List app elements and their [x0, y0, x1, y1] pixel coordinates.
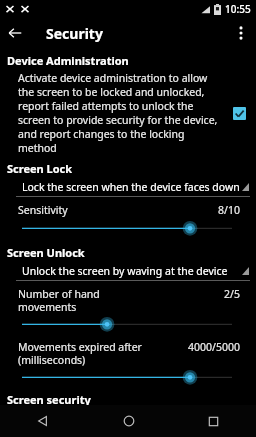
button[interactable]: Lock the screen when the device faces do… — [16, 180, 250, 197]
staticText: Activate device administration to allow … — [18, 71, 222, 155]
staticText: 8/10 — [218, 203, 240, 217]
staticText: Screen security — [7, 392, 91, 405]
button[interactable]: Unlock the screen by waving at the devic… — [16, 264, 250, 281]
staticText: Lock the screen when the device faces do… — [22, 180, 242, 194]
staticText: Security — [46, 24, 103, 43]
button[interactable]: Home — [86, 405, 171, 437]
button[interactable]: Activate device administration to allow … — [0, 71, 256, 155]
button[interactable]: Back — [0, 405, 86, 437]
staticText: Number of hand movements — [18, 287, 224, 314]
staticText: Movements expired after (milliseconds) — [18, 340, 188, 367]
button[interactable]: Back — [0, 18, 30, 48]
button[interactable]: Recent apps — [171, 405, 256, 437]
staticText: Sensitivity — [18, 203, 218, 217]
staticText: 10:55 — [225, 2, 251, 16]
button[interactable]: Slider — [0, 316, 256, 332]
staticText: 4000/5000 — [188, 340, 240, 354]
button[interactable]: Device administration enabled — [232, 106, 246, 120]
staticText: 2/5 — [224, 287, 240, 301]
staticText: Unlock the screen by waving at the devic… — [22, 264, 242, 278]
button[interactable]: Slider — [0, 220, 256, 236]
button[interactable]: Slider — [0, 369, 256, 385]
button[interactable]: More options — [226, 18, 256, 48]
staticText: Screen Lock — [7, 161, 73, 176]
staticText: Device Administration — [7, 53, 129, 68]
staticText: Screen Unlock — [7, 245, 85, 260]
